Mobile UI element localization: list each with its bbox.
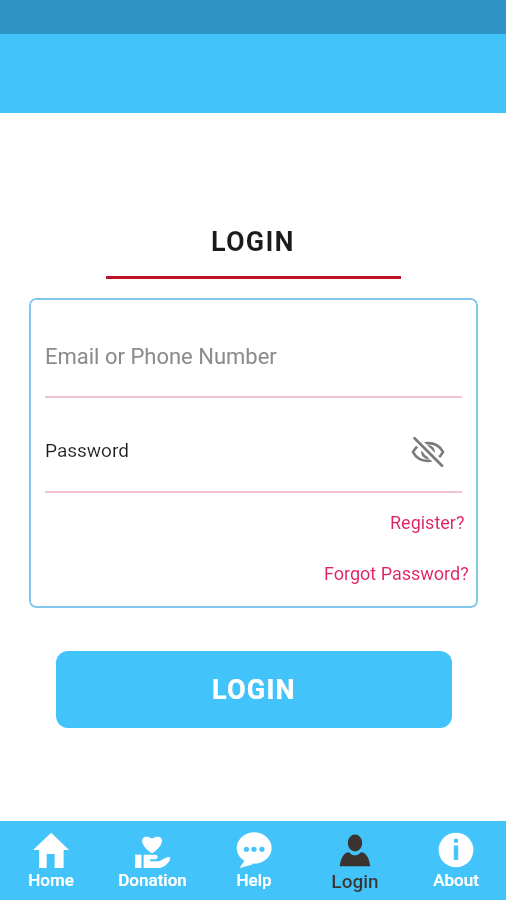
staticText: Home (28, 870, 74, 890)
button[interactable]: Help (203, 821, 304, 900)
staticText: Login (331, 870, 379, 892)
staticText: About (433, 870, 479, 890)
staticText: Password (45, 439, 129, 461)
button[interactable]: About (405, 821, 506, 900)
staticText: Email or Phone Number (45, 344, 277, 370)
staticText: Donation (118, 870, 187, 890)
staticText: Register? (390, 512, 465, 533)
button[interactable]: LOGIN (56, 651, 452, 728)
staticText: LOGIN (211, 226, 295, 258)
button[interactable]: Register? (29, 509, 465, 535)
button[interactable]: Show password (412, 436, 444, 468)
staticText: Help (236, 870, 272, 890)
button[interactable]: Home (0, 821, 102, 900)
button[interactable]: Forgot Password? (29, 560, 469, 586)
button[interactable]: Donation (102, 821, 203, 900)
button[interactable]: Login (304, 821, 405, 900)
staticText: LOGIN (212, 674, 296, 706)
staticText: Forgot Password? (324, 563, 469, 584)
